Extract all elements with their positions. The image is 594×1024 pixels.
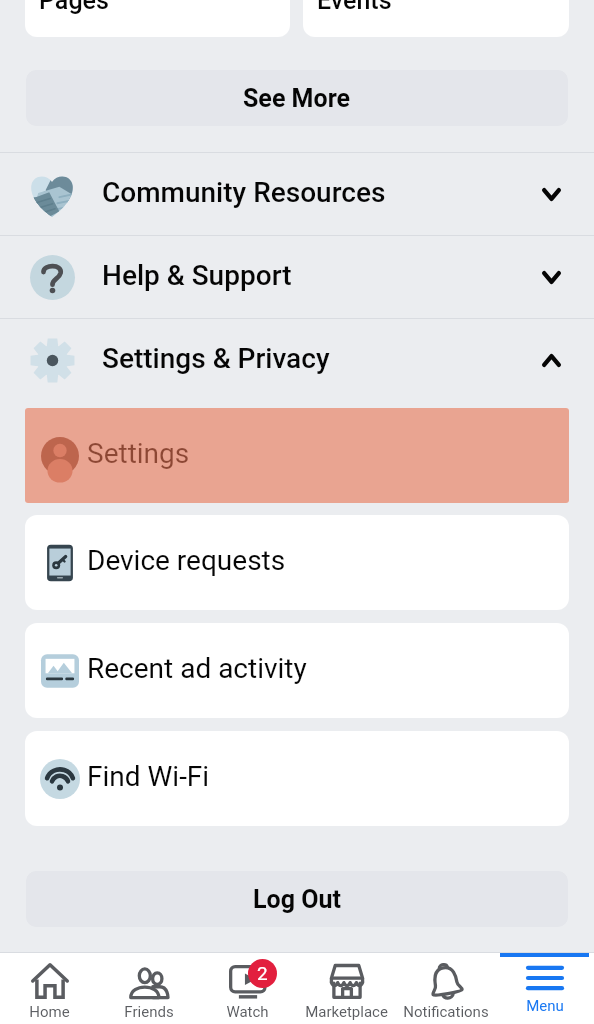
button[interactable]: Device requests [25, 515, 569, 610]
button[interactable]: Marketplace [297, 953, 396, 1024]
staticText: Watch [226, 1003, 269, 1021]
staticText: See More [243, 84, 351, 113]
button[interactable]: Notifications [396, 953, 495, 1024]
staticText: Notifications [403, 1003, 489, 1021]
button[interactable]: Find Wi-Fi [25, 731, 569, 826]
staticText: Settings [87, 437, 190, 470]
button[interactable]: Events [303, 0, 569, 37]
staticText: Community Resources [102, 176, 386, 209]
button[interactable]: Home [0, 953, 99, 1024]
button[interactable]: Pages [25, 0, 290, 37]
button[interactable]: Settings [25, 408, 569, 503]
button[interactable]: Community Resources [0, 153, 594, 235]
staticText: Home [29, 1003, 70, 1021]
button[interactable]: See More [26, 70, 568, 126]
staticText: Device requests [87, 544, 286, 577]
staticText: Help & Support [102, 259, 292, 292]
staticText: Log Out [253, 885, 341, 914]
staticText: Settings & Privacy [102, 342, 330, 375]
button[interactable]: Help & Support [0, 236, 594, 318]
button[interactable]: Log Out [26, 871, 568, 927]
staticText: Marketplace [305, 1003, 388, 1021]
staticText: Recent ad activity [87, 652, 307, 685]
staticText: Events [317, 0, 392, 15]
staticText: Pages [39, 0, 109, 15]
button[interactable]: Friends [99, 953, 198, 1024]
staticText: 2 [257, 962, 268, 984]
button[interactable]: Menu [495, 953, 594, 1024]
staticText: Menu [526, 997, 564, 1015]
staticText: Friends [124, 1003, 174, 1021]
button[interactable]: 2 [198, 953, 297, 1024]
button[interactable]: Settings & Privacy [0, 319, 594, 401]
button[interactable]: Recent ad activity [25, 623, 569, 718]
staticText: Find Wi-Fi [87, 760, 210, 793]
